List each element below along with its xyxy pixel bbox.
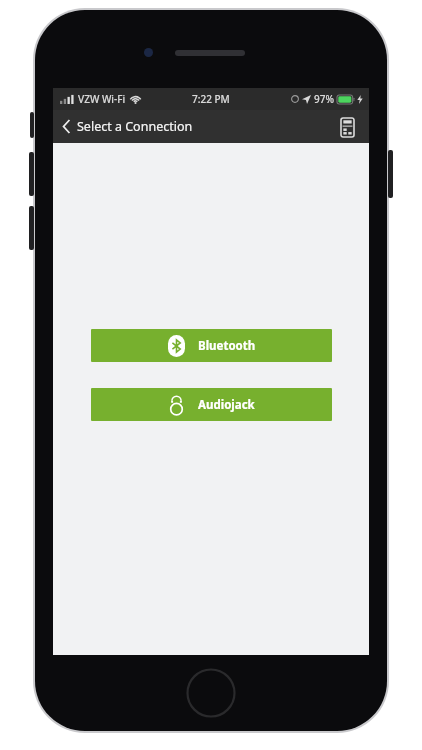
staticText: 7:22 PM (192, 92, 230, 106)
button[interactable]: Select a Connection (53, 114, 201, 139)
button[interactable]: Bluetooth (91, 329, 332, 362)
staticText: Select a Connection (77, 118, 193, 135)
staticText: Bluetooth (198, 338, 256, 354)
staticText: 97% (314, 92, 334, 106)
staticText: VZW Wi-Fi (78, 92, 126, 106)
button[interactable]: Device (334, 114, 360, 140)
staticText: Audiojack (198, 397, 255, 413)
button[interactable]: Audiojack (91, 388, 332, 421)
